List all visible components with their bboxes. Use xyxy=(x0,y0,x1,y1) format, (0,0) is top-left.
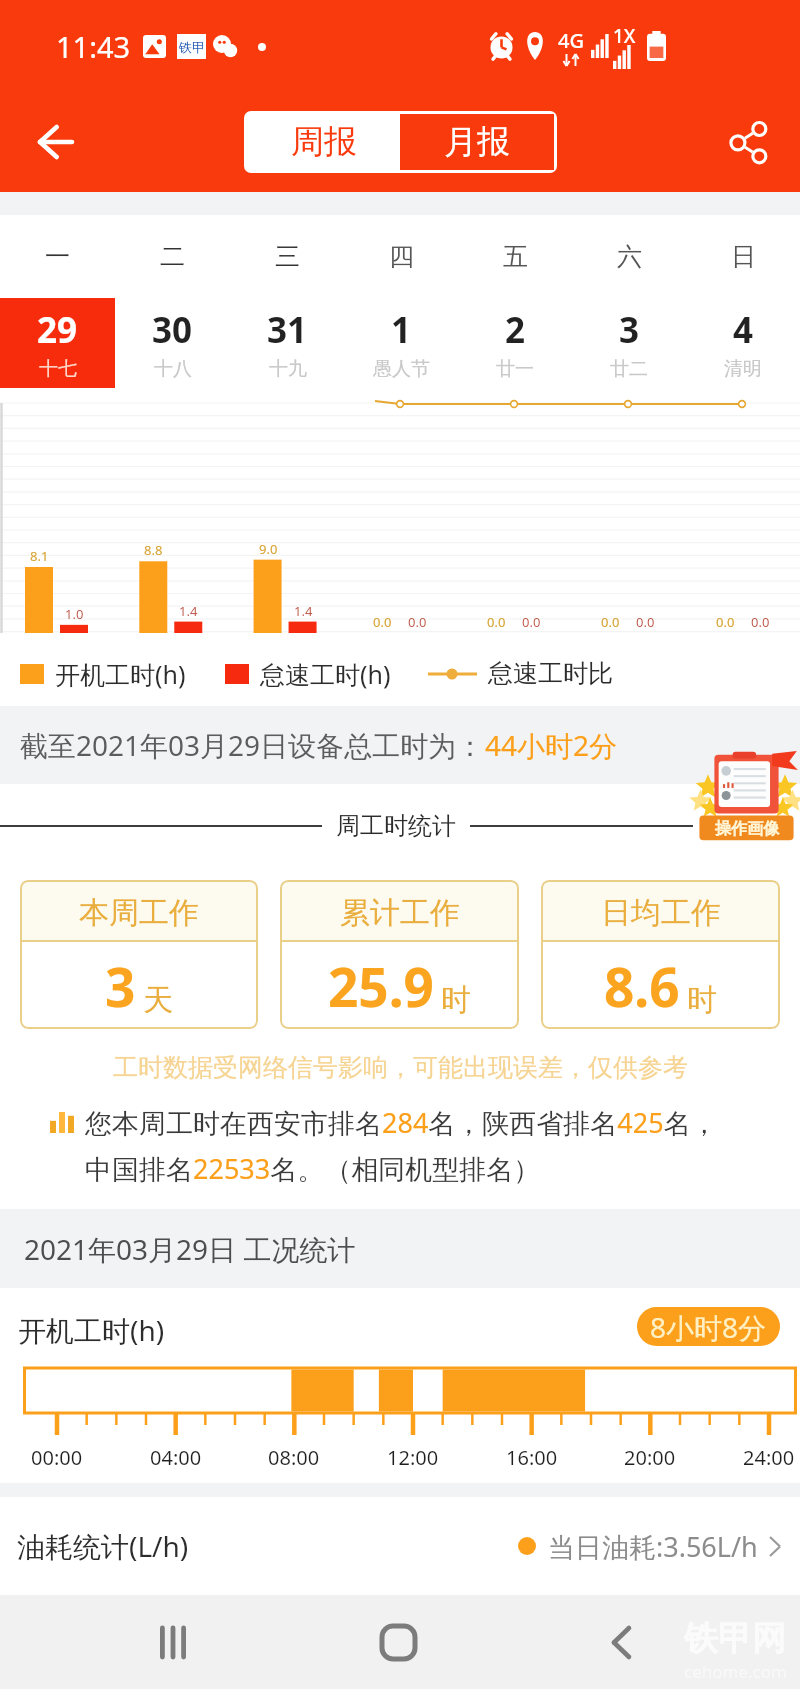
staticText: 五 xyxy=(503,241,528,272)
button[interactable]: 五 xyxy=(458,215,572,392)
staticText: 廿一 xyxy=(496,357,534,381)
staticText: 时 xyxy=(441,981,471,1019)
staticText: 0.0 xyxy=(751,613,770,631)
staticText: 铁甲 xyxy=(179,39,205,55)
button[interactable]: 日 xyxy=(686,215,800,392)
staticText: 周工时统计 xyxy=(336,811,456,841)
button[interactable]: 六 xyxy=(572,215,686,392)
staticText: 一 xyxy=(45,241,70,272)
staticText: 十八 xyxy=(154,357,192,381)
staticText: 四 xyxy=(389,241,414,272)
staticText: 时 xyxy=(687,981,717,1019)
button[interactable]: 日均工作 xyxy=(541,880,780,1029)
staticText: 9.0 xyxy=(259,540,278,558)
staticText: 1.0 xyxy=(65,605,84,623)
staticText: 8.6 xyxy=(604,950,680,1022)
staticText: 周报 xyxy=(291,121,357,163)
staticText: 累计工作 xyxy=(340,894,460,932)
staticText: 0.0 xyxy=(522,613,541,631)
staticText: 日 xyxy=(731,241,756,272)
staticText: 8小时8分 xyxy=(650,1308,767,1346)
button[interactable]: 操作画像 xyxy=(693,749,800,844)
staticText: 2 xyxy=(505,306,526,354)
button[interactable]: 油耗统计(L/h) xyxy=(0,1497,800,1595)
staticText: 截至2021年03月29日设备总工时为： xyxy=(20,726,485,764)
staticText: 开机工时(h) xyxy=(18,1311,165,1349)
staticText: 04:00 xyxy=(150,1444,202,1471)
staticText: 8.1 xyxy=(30,547,49,565)
staticText: 30 xyxy=(152,306,193,354)
button[interactable]: 月报 xyxy=(400,114,554,170)
staticText: 29 xyxy=(37,306,78,354)
button[interactable]: Recent apps xyxy=(133,1595,213,1689)
staticText: 操作画像 xyxy=(715,819,779,839)
button[interactable]: 8小时8分 xyxy=(637,1307,780,1346)
staticText: 清明 xyxy=(724,357,762,381)
staticText: 16:00 xyxy=(506,1444,558,1471)
button[interactable]: 本周工作 xyxy=(20,880,258,1029)
staticText: 25.9 xyxy=(328,950,434,1022)
staticText: 8.8 xyxy=(144,541,163,559)
staticText: 1 xyxy=(391,306,412,354)
button[interactable]: 三 xyxy=(230,215,344,392)
staticText: 1.4 xyxy=(294,602,313,620)
staticText: 3 xyxy=(619,306,640,354)
staticText: 十七 xyxy=(39,357,77,381)
button[interactable]: Back xyxy=(581,1595,661,1689)
staticText: 3 xyxy=(105,950,136,1022)
staticText: 11:43 xyxy=(56,27,131,66)
staticText: 0.0 xyxy=(601,613,620,631)
button[interactable]: 四 xyxy=(344,215,458,392)
staticText: 日均工作 xyxy=(601,894,721,932)
staticText: 08:00 xyxy=(268,1444,320,1471)
button[interactable]: 二 xyxy=(115,215,230,392)
staticText: 六 xyxy=(617,241,642,272)
staticText: 12:00 xyxy=(387,1444,439,1471)
staticText: 0.0 xyxy=(487,613,506,631)
staticText: 十九 xyxy=(269,357,307,381)
staticText: 二 xyxy=(160,241,185,272)
staticText: 2021年03月29日 工况统计 xyxy=(24,1230,356,1268)
staticText: 开机工时(h) xyxy=(55,657,186,691)
staticText: 本周工作 xyxy=(79,894,199,932)
staticText: 您本周工时在西安市排名284名，陕西省排名425名，中国排名22533名。（相同… xyxy=(85,1104,735,1187)
staticText: 廿二 xyxy=(610,357,648,381)
staticText: 0.0 xyxy=(408,613,427,631)
staticText: 1.4 xyxy=(179,602,198,620)
staticText: 当日油耗:3.56L/h xyxy=(548,1528,758,1565)
staticText: 愚人节 xyxy=(373,357,430,381)
staticText: 1X xyxy=(613,23,636,49)
staticText: 月报 xyxy=(444,121,510,163)
staticText: 4 xyxy=(733,306,754,354)
staticText: 44小时2分 xyxy=(485,726,618,764)
staticText: 24:00 xyxy=(743,1444,795,1471)
staticText: 00:00 xyxy=(31,1444,83,1471)
button[interactable]: Home xyxy=(358,1595,438,1689)
staticText: 工时数据受网络信号影响，可能出现误差，仅供参考 xyxy=(113,1052,688,1083)
button[interactable]: 累计工作 xyxy=(280,880,519,1029)
staticText: 20:00 xyxy=(624,1444,676,1471)
staticText: 0.0 xyxy=(373,613,392,631)
staticText: 31 xyxy=(267,306,308,354)
staticText: 怠速工时比 xyxy=(488,658,613,689)
button[interactable]: Share xyxy=(712,106,784,178)
button[interactable]: 周报 xyxy=(247,114,400,170)
button[interactable]: 一 xyxy=(0,215,115,392)
staticText: 天 xyxy=(143,981,173,1019)
staticText: 油耗统计(L/h) xyxy=(17,1527,189,1565)
staticText: 怠速工时(h) xyxy=(260,657,391,691)
button[interactable]: Back xyxy=(19,106,91,178)
staticText: 0.0 xyxy=(636,613,655,631)
staticText: 铁甲网 xyxy=(684,1617,786,1660)
staticText: 4G xyxy=(558,27,584,54)
staticText: 0.0 xyxy=(716,613,735,631)
staticText: 三 xyxy=(275,241,300,272)
